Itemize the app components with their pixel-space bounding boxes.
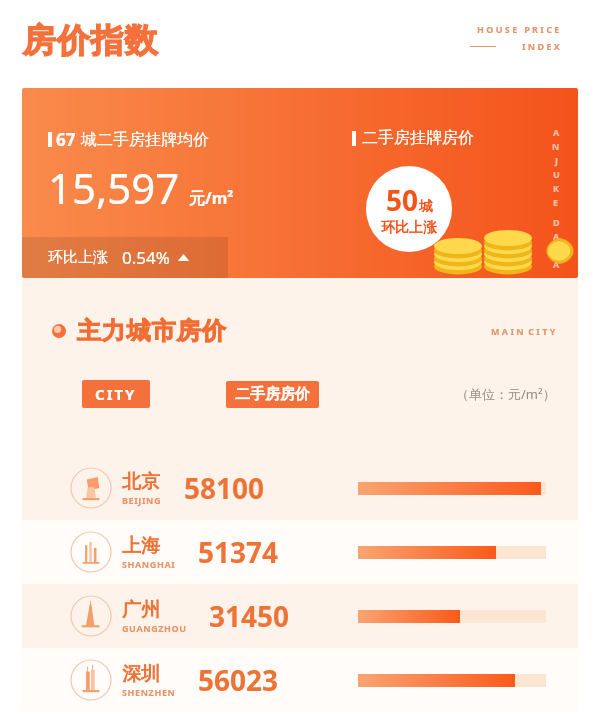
staticText: 深圳 [122,662,160,686]
staticText: 环比上涨 [381,219,437,237]
staticText: GUANGZHOU [122,622,187,634]
staticText: 房价指数 [22,20,158,62]
staticText: 元/m² [189,187,234,209]
staticText: 北京 [122,470,160,494]
staticText: N [552,140,560,152]
staticText: CITY [95,384,137,404]
button[interactable]: 二手房房价 [226,381,319,408]
staticText: 31450 [209,597,290,635]
staticText: J [555,154,558,166]
staticText: 56023 [198,661,279,699]
staticText: 50 [386,181,419,219]
staticText: 主力城市房价 [76,316,226,346]
staticText: 上海 [122,534,160,558]
staticText: U [553,168,560,180]
staticText: D [553,216,560,228]
staticText: 58100 [184,469,265,507]
staticText: 城 [419,198,433,216]
staticText: 城二手房挂牌均价 [81,130,209,150]
staticText: 0.54% [122,246,170,269]
staticText: BEIJING [122,494,162,506]
staticText: SHANGHAI [122,558,176,570]
staticText: E [553,196,559,208]
staticText: 15,597 [48,159,180,216]
staticText: H O U S E P R I C E [477,23,560,35]
button[interactable]: 广州 [22,584,578,648]
staticText: M A I N C I T Y [491,325,556,337]
staticText: I N D E X [522,40,560,52]
staticText: 二手房房价 [235,385,310,404]
staticText: A [553,258,560,270]
button[interactable]: CITY [82,380,150,408]
staticText: 51374 [198,533,279,571]
staticText: （单位：元/m²） [456,385,556,403]
staticText: A [553,126,560,138]
staticText: K [553,182,559,194]
button[interactable]: 深圳 [22,648,578,712]
staticText: 67 [56,128,76,151]
staticText: 二手房挂牌房价 [362,128,474,148]
staticText: A [553,230,560,242]
button[interactable]: 北京 [22,456,578,520]
button[interactable]: 上海 [22,520,578,584]
staticText: 环比上涨 [48,248,108,267]
button[interactable]: 67 [22,88,578,278]
staticText: SHENZHEN [122,686,176,698]
staticText: 广州 [122,598,160,622]
